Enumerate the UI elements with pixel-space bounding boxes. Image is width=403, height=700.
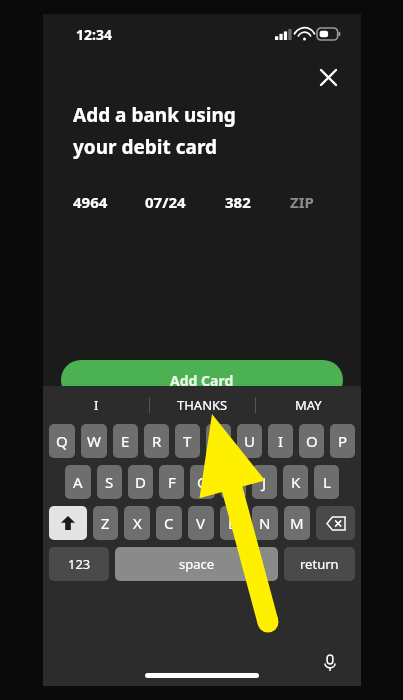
- staticText: S: [105, 472, 114, 492]
- button[interactable]: 07/24: [145, 192, 225, 212]
- button[interactable]: M: [284, 506, 310, 540]
- staticText: V: [196, 513, 206, 533]
- staticText: W: [87, 431, 101, 451]
- button[interactable]: Dictation: [317, 650, 343, 676]
- button[interactable]: 123: [49, 547, 109, 581]
- staticText: Add a bank using: [73, 102, 236, 128]
- button[interactable]: J: [252, 465, 277, 499]
- button[interactable]: 382: [225, 192, 290, 212]
- staticText: N: [259, 513, 271, 533]
- button[interactable]: H: [221, 465, 246, 499]
- button[interactable]: F: [159, 465, 184, 499]
- button[interactable]: O: [299, 424, 324, 458]
- staticText: U: [244, 431, 255, 451]
- button[interactable]: Z: [93, 506, 118, 540]
- button[interactable]: G: [190, 465, 215, 499]
- staticText: K: [291, 472, 301, 492]
- button[interactable]: 4964: [73, 192, 145, 212]
- staticText: 12:34: [76, 25, 112, 44]
- button[interactable]: R: [144, 424, 169, 458]
- staticText: D: [135, 472, 146, 492]
- button[interactable]: C: [156, 506, 182, 540]
- staticText: M: [290, 513, 304, 533]
- button[interactable]: Backspace: [316, 506, 355, 540]
- button[interactable]: S: [97, 465, 122, 499]
- staticText: O: [306, 431, 318, 451]
- button[interactable]: A: [65, 465, 91, 499]
- staticText: E: [121, 431, 130, 451]
- button[interactable]: THANKS: [150, 396, 255, 414]
- button[interactable]: B: [220, 506, 246, 540]
- staticText: A: [73, 472, 83, 492]
- staticText: ZIP: [290, 192, 314, 212]
- button[interactable]: space: [115, 547, 278, 581]
- button[interactable]: K: [283, 465, 308, 499]
- button[interactable]: ZIP: [290, 192, 314, 212]
- staticText: return: [300, 555, 339, 573]
- staticText: Add Card: [170, 371, 234, 390]
- button[interactable]: I: [268, 424, 293, 458]
- staticText: your debit card: [73, 134, 218, 160]
- button[interactable]: Close: [311, 60, 345, 94]
- staticText: I: [94, 396, 99, 414]
- button[interactable]: W: [81, 424, 107, 458]
- staticText: B: [228, 513, 238, 533]
- staticText: 123: [68, 555, 91, 573]
- staticText: L: [323, 472, 331, 492]
- button[interactable]: MAY: [256, 396, 361, 414]
- staticText: THANKS: [177, 396, 228, 414]
- staticText: 07/24: [145, 192, 186, 212]
- button[interactable]: N: [252, 506, 278, 540]
- button[interactable]: Shift: [49, 506, 87, 540]
- staticText: G: [197, 472, 208, 492]
- staticText: P: [338, 431, 348, 451]
- staticText: 4964: [73, 192, 108, 212]
- staticText: I: [278, 431, 284, 451]
- button[interactable]: D: [128, 465, 153, 499]
- staticText: space: [179, 555, 215, 573]
- button[interactable]: X: [124, 506, 150, 540]
- staticText: T: [183, 431, 192, 451]
- button[interactable]: return: [284, 547, 355, 581]
- staticText: 382: [225, 192, 251, 212]
- button[interactable]: E: [113, 424, 138, 458]
- button[interactable]: V: [188, 506, 214, 540]
- staticText: MAY: [295, 396, 322, 414]
- staticText: J: [262, 472, 267, 492]
- button[interactable]: L: [314, 465, 339, 499]
- button[interactable]: Q: [49, 424, 75, 458]
- button[interactable]: I: [43, 396, 149, 414]
- button[interactable]: Y: [206, 424, 231, 458]
- button[interactable]: T: [175, 424, 200, 458]
- staticText: R: [152, 431, 162, 451]
- staticText: Q: [56, 431, 68, 451]
- button[interactable]: Add Card: [61, 360, 343, 400]
- staticText: C: [164, 513, 174, 533]
- button[interactable]: U: [237, 424, 262, 458]
- staticText: Z: [101, 513, 110, 533]
- button[interactable]: P: [330, 424, 355, 458]
- staticText: F: [168, 472, 176, 492]
- staticText: X: [133, 513, 142, 533]
